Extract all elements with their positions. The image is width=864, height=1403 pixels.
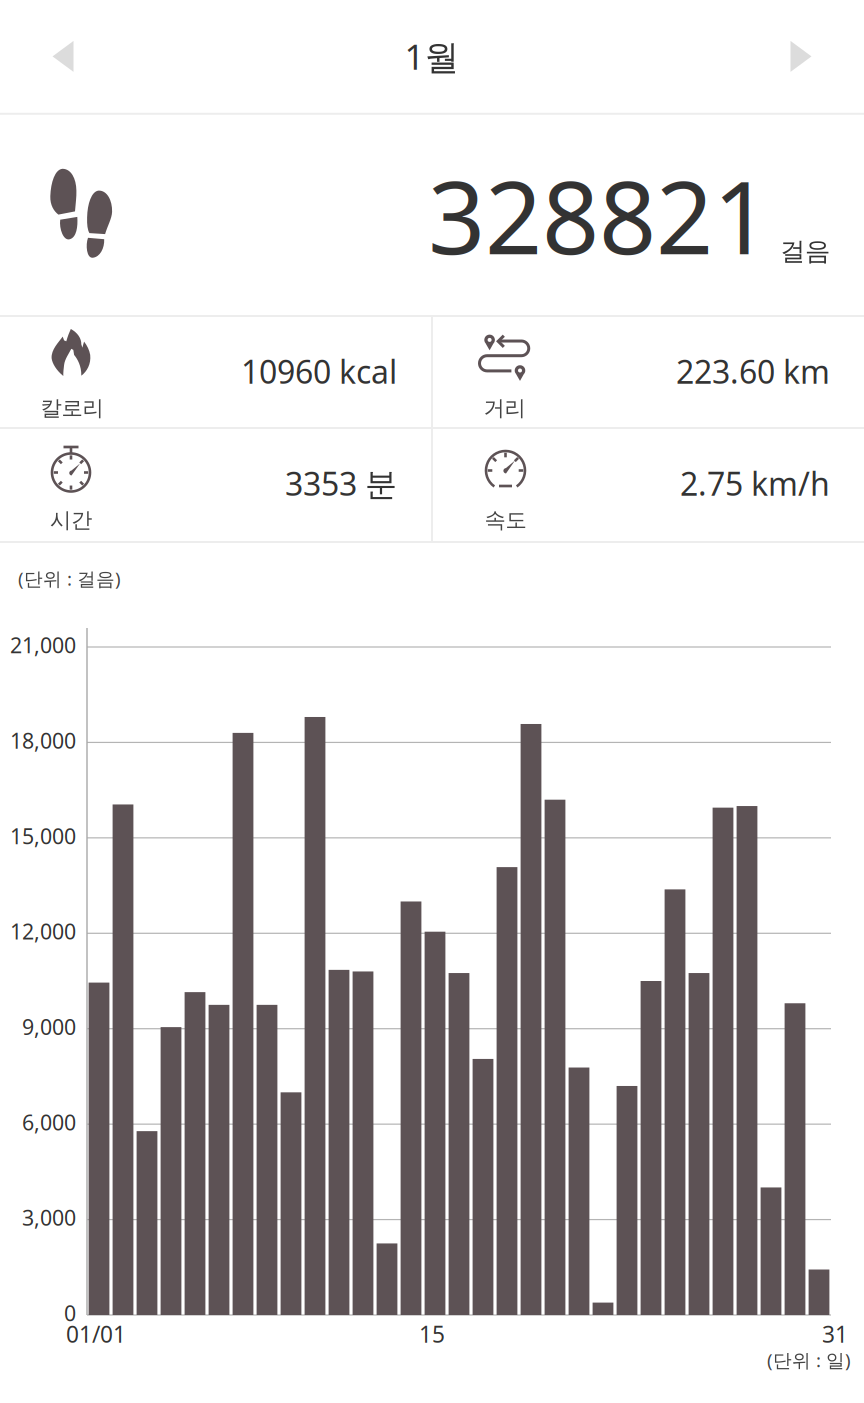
staticText: 3,000 [22,1203,76,1232]
staticText: 12,000 [10,917,76,945]
staticText: 1월 [404,33,459,79]
staticText: 칼로리 [40,395,103,421]
staticText: 328821 [428,149,770,282]
staticText: 01/01 [66,1319,126,1349]
staticText: 223.60 km [676,350,830,392]
staticText: 속도 [484,507,526,533]
staticText: 18,000 [10,726,76,755]
staticText: 6,000 [22,1108,76,1136]
button[interactable]: 속도 [433,429,864,541]
staticText: 걸음 [780,236,830,267]
staticText: (단위 : 일) [767,1348,851,1372]
staticText: 2.75 km/h [680,462,830,504]
button[interactable]: Next month [738,0,864,113]
staticText: (단위 : 걸음) [18,566,121,591]
button[interactable]: 칼로리 [0,317,431,427]
button[interactable]: 시간 [0,429,431,541]
staticText: 0 [64,1299,76,1327]
staticText: 31 [822,1319,848,1349]
staticText: 10960 kcal [241,350,397,392]
staticText: 21,000 [10,631,76,659]
button[interactable]: 거리 [433,317,864,427]
staticText: 시간 [50,507,92,533]
staticText: 9,000 [22,1012,76,1041]
staticText: 15,000 [10,822,76,850]
button[interactable]: Previous month [0,0,126,113]
staticText: 15 [419,1319,445,1349]
staticText: 거리 [483,395,525,421]
staticText: 3353 분 [285,462,397,504]
